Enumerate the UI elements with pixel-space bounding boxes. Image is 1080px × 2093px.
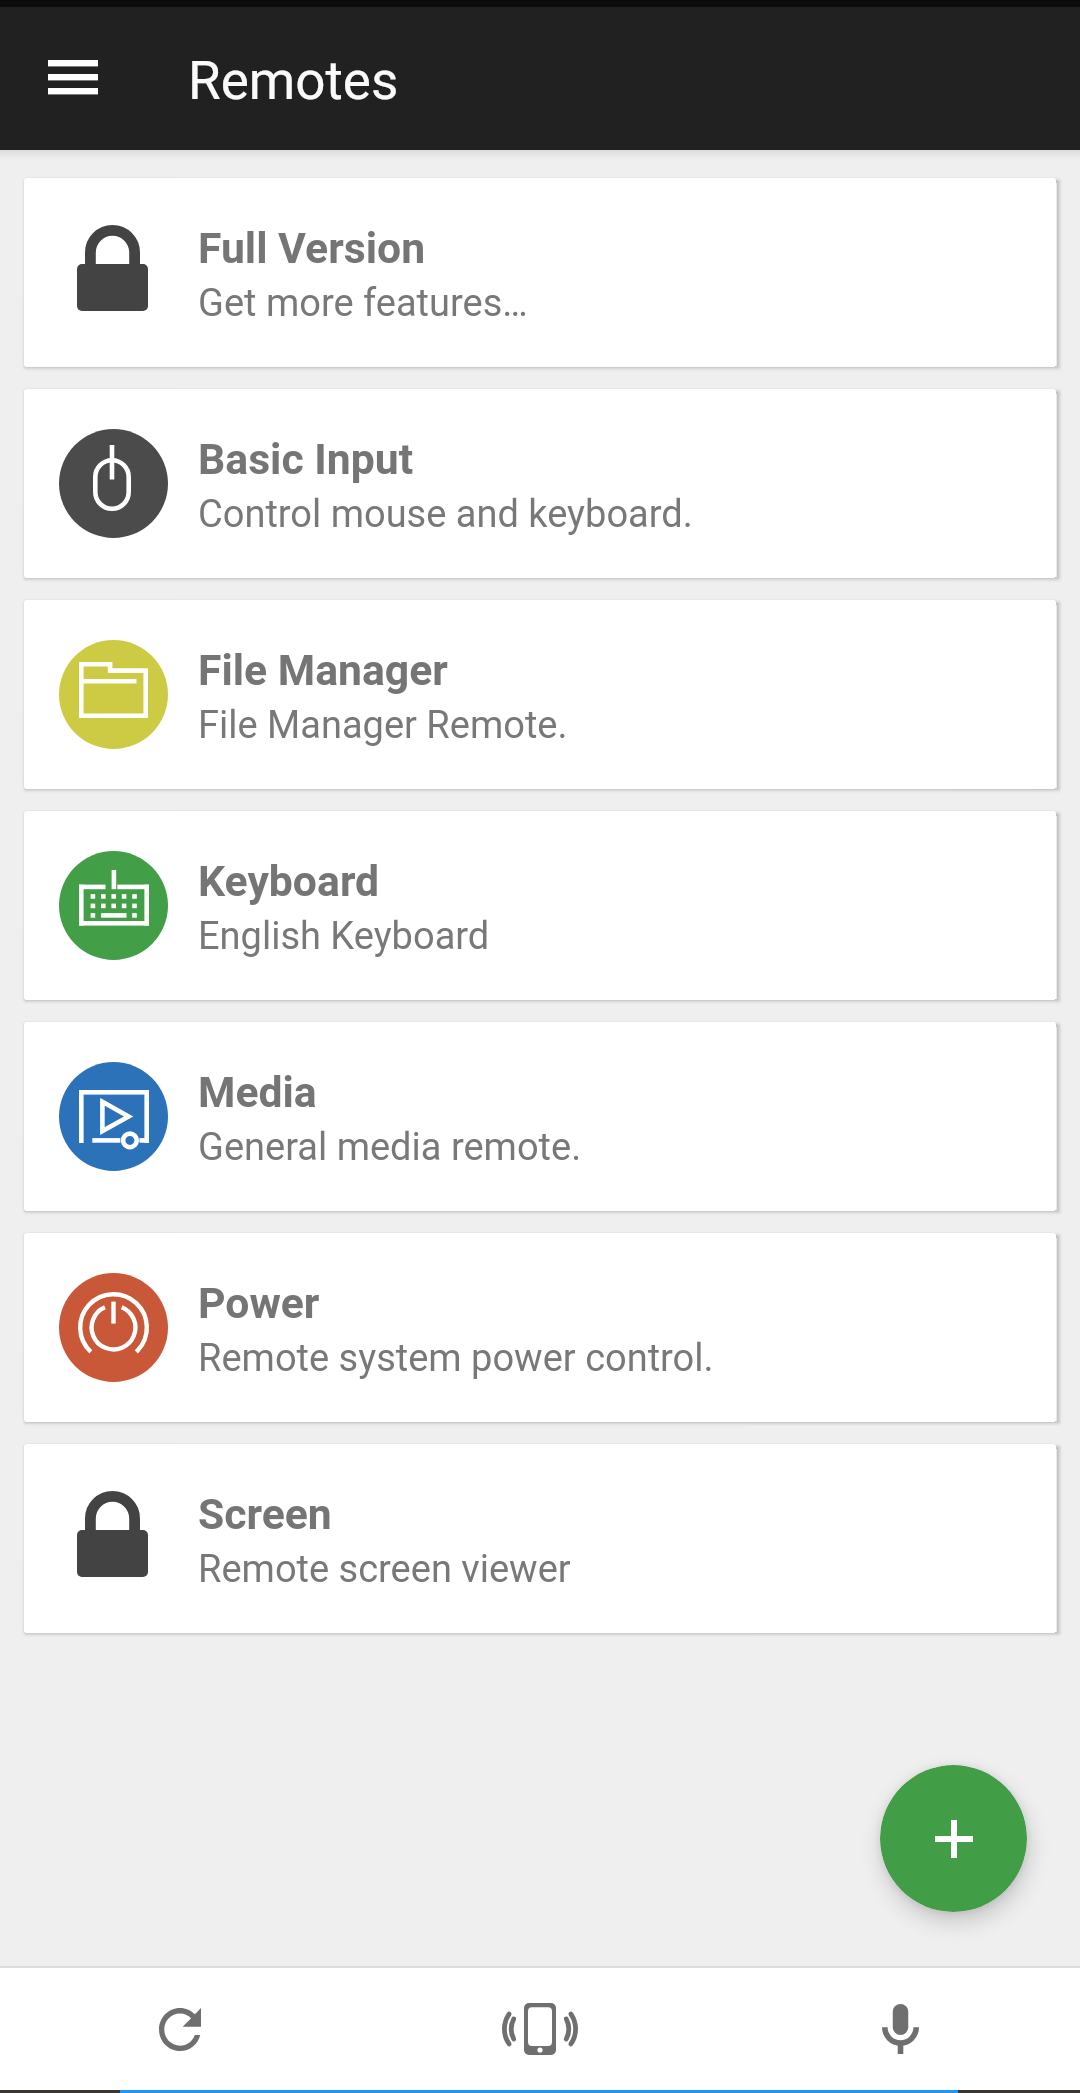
button[interactable]: Refresh [0, 1968, 360, 2090]
staticText: Remote system power control. [198, 1336, 714, 1381]
staticText: Control mouse and keyboard. [198, 492, 693, 537]
button[interactable]: Basic Input [24, 389, 1056, 578]
button[interactable]: Keyboard [24, 811, 1056, 1000]
button[interactable]: Vibrate device [360, 1968, 720, 2090]
staticText: Remotes [188, 50, 399, 112]
button[interactable]: Voice input [720, 1968, 1080, 2090]
staticText: Keyboard [198, 856, 380, 906]
button[interactable]: File Manager [24, 600, 1056, 789]
staticText: English Keyboard [198, 914, 490, 959]
button[interactable]: Full Version [24, 178, 1056, 367]
button[interactable]: Screen [24, 1444, 1056, 1633]
staticText: Power [198, 1278, 320, 1328]
staticText: Basic Input [198, 434, 414, 484]
staticText: Remote screen viewer [198, 1547, 571, 1592]
button[interactable]: Add remote [880, 1765, 1027, 1912]
staticText: Get more features… [198, 281, 528, 326]
staticText: Media [198, 1067, 317, 1117]
staticText: File Manager Remote. [198, 703, 568, 748]
staticText: Screen [198, 1489, 332, 1539]
staticText: Full Version [198, 223, 426, 273]
button[interactable]: Open navigation drawer [18, 27, 128, 127]
staticText: General media remote. [198, 1125, 582, 1170]
button[interactable]: Power [24, 1233, 1056, 1422]
staticText: File Manager [198, 645, 448, 695]
button[interactable]: Media [24, 1022, 1056, 1211]
